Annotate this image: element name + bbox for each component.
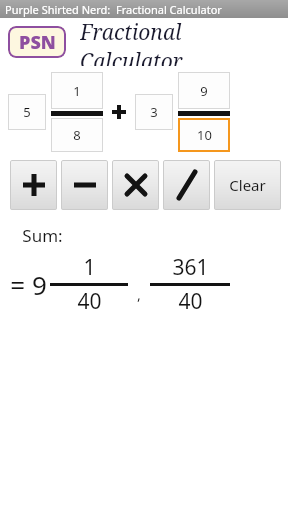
staticText: 361 (172, 253, 209, 282)
staticText: 5 (23, 103, 31, 121)
staticText: Clear (229, 175, 266, 195)
button[interactable]: Number field 5 (8, 94, 46, 130)
button[interactable]: Number field 1 (51, 72, 103, 109)
staticText: 40 (178, 287, 203, 316)
button[interactable]: Clear (214, 160, 281, 210)
staticText: PSN (19, 30, 56, 55)
staticText: = 9 (10, 267, 47, 302)
staticText: Fractional Calculator (80, 18, 288, 66)
staticText: , (137, 285, 141, 304)
button[interactable]: Plus (10, 160, 57, 210)
button[interactable]: Number field 8 (51, 118, 103, 152)
staticText: 8 (73, 126, 81, 144)
staticText: 3 (150, 103, 158, 121)
button[interactable]: Number field 10 (178, 118, 230, 152)
button[interactable]: Number field 9 (178, 72, 230, 109)
staticText: 9 (200, 82, 208, 100)
staticText: 1 (73, 82, 81, 100)
button[interactable]: Purple Shirted Nerd logo (8, 26, 66, 58)
button[interactable]: Number field 3 (135, 94, 173, 130)
staticText: 10 (197, 126, 212, 144)
button[interactable]: Minus (61, 160, 108, 210)
staticText: Sum: (22, 224, 63, 247)
staticText: 1 (83, 253, 96, 282)
staticText: 40 (77, 287, 102, 316)
button[interactable]: Divide (163, 160, 210, 210)
staticText: Purple Shirted Nerd: Fractional Calculat… (5, 2, 222, 17)
button[interactable]: Multiply (112, 160, 159, 210)
